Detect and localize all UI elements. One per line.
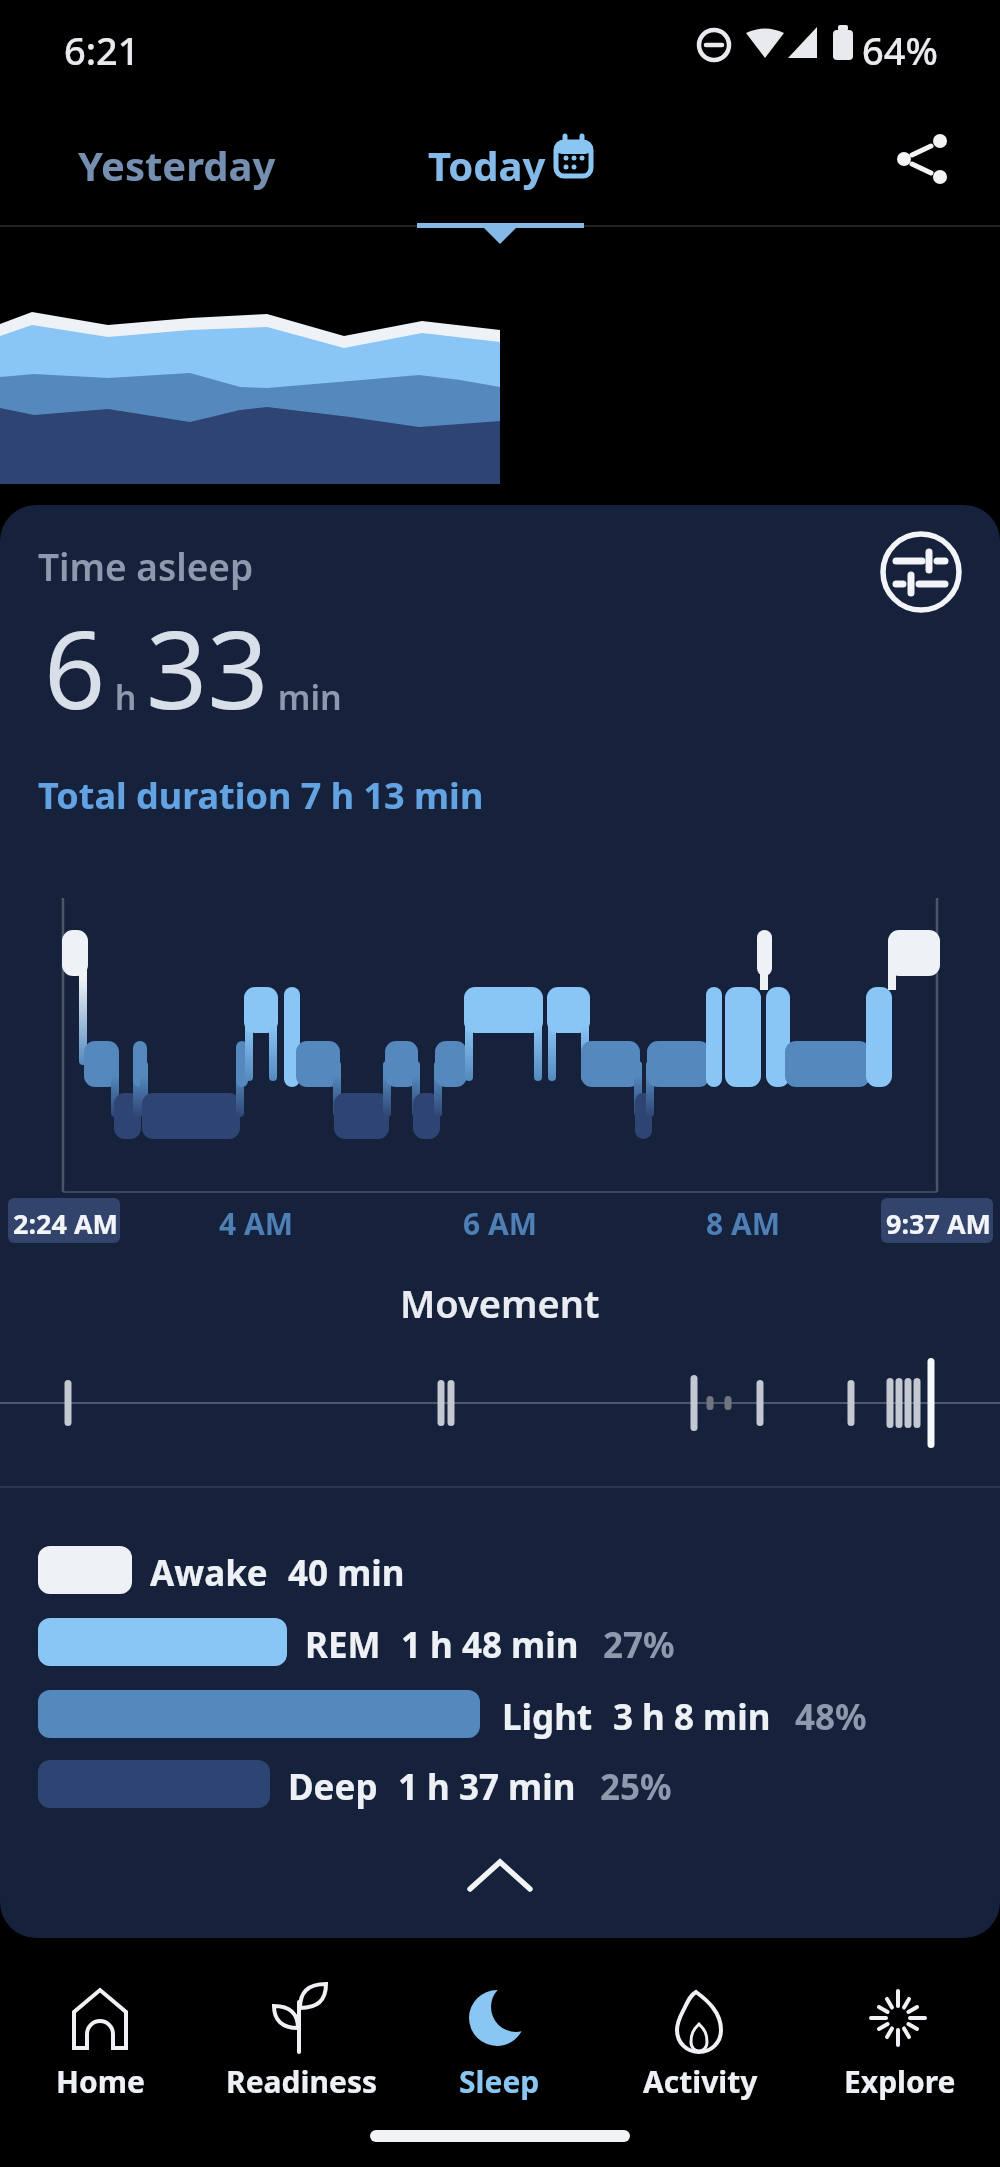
staticText: 27% bbox=[603, 1621, 675, 1669]
staticText: 4 AM bbox=[219, 1203, 294, 1244]
staticText: 6 bbox=[44, 595, 106, 741]
button[interactable] bbox=[440, 1975, 560, 2100]
staticText: Readiness bbox=[226, 2061, 378, 2102]
staticText: 48% bbox=[795, 1693, 867, 1741]
staticText: min bbox=[269, 674, 342, 720]
button[interactable] bbox=[40, 1975, 160, 2100]
staticText: 3 h 8 min bbox=[613, 1693, 771, 1741]
button[interactable] bbox=[878, 115, 968, 205]
staticText: Explore bbox=[844, 2061, 956, 2102]
staticText: Movement bbox=[400, 1277, 600, 1329]
staticText: Awake bbox=[150, 1549, 268, 1597]
button[interactable] bbox=[230, 1975, 370, 2100]
button[interactable] bbox=[640, 1975, 760, 2100]
staticText: h bbox=[106, 674, 146, 720]
staticText: 1 h 37 min bbox=[398, 1763, 576, 1811]
staticText: Activity bbox=[643, 2061, 758, 2102]
staticText: 2:24 AM bbox=[13, 1205, 119, 1242]
staticText: Today bbox=[428, 138, 546, 192]
button[interactable] bbox=[840, 1975, 960, 2100]
staticText: Total duration 7 h 13 min bbox=[38, 771, 484, 820]
staticText: REM bbox=[305, 1621, 381, 1669]
staticText: 25% bbox=[600, 1763, 672, 1811]
staticText: 64% bbox=[862, 24, 938, 76]
staticText: Light bbox=[502, 1693, 593, 1741]
staticText: Home bbox=[56, 2061, 145, 2102]
button[interactable] bbox=[60, 120, 280, 210]
staticText: Deep bbox=[288, 1763, 378, 1811]
staticText: 8 AM bbox=[706, 1203, 781, 1244]
staticText: Yesterday bbox=[78, 138, 276, 192]
staticText: Sleep bbox=[459, 2061, 540, 2102]
staticText: Time asleep bbox=[38, 541, 254, 591]
button[interactable] bbox=[440, 1840, 560, 1916]
staticText: 6:21 bbox=[64, 24, 140, 76]
staticText: 6 AM bbox=[463, 1203, 538, 1244]
button[interactable] bbox=[410, 120, 590, 210]
staticText: 1 h 48 min bbox=[401, 1621, 579, 1669]
staticText: 33 bbox=[146, 595, 269, 741]
staticText: 40 min bbox=[288, 1549, 405, 1597]
staticText: 9:37 AM bbox=[886, 1205, 992, 1242]
button[interactable] bbox=[880, 532, 962, 614]
